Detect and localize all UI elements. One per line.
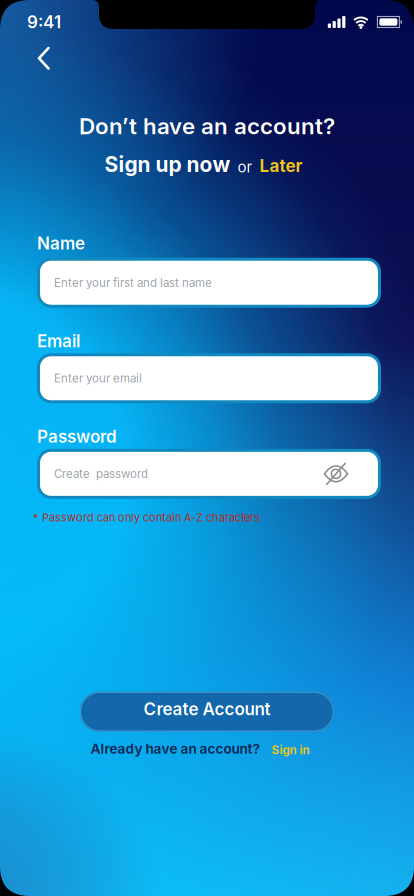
staticText: 9:41 (27, 12, 61, 32)
staticText: Already have an account? (90, 741, 260, 757)
staticText: Name (37, 233, 85, 254)
button[interactable]: Password, Create password (37, 449, 381, 499)
staticText: Enter your first and last name (54, 276, 212, 290)
button[interactable]: Create Account (80, 692, 334, 732)
staticText: Email (37, 331, 80, 351)
staticText: Enter your email (54, 371, 142, 385)
staticText: * Password can only contain A-Z characte… (33, 511, 260, 524)
button[interactable]: Back (39, 48, 48, 68)
staticText: Create Account (143, 699, 270, 719)
button[interactable]: Email, Enter your email (37, 353, 381, 403)
staticText: or (237, 158, 252, 176)
button[interactable]: Sign in (271, 743, 309, 757)
staticText: Sign in (271, 743, 309, 757)
button[interactable]: Name, Enter your first and last name (37, 258, 381, 308)
staticText: Password (37, 426, 117, 447)
staticText: Sign up now (104, 152, 230, 177)
button[interactable]: Later (259, 156, 302, 177)
staticText: Don’t have an account? (79, 112, 335, 140)
button[interactable]: Show password (323, 462, 366, 486)
staticText: Later (259, 156, 302, 176)
staticText: Create password (54, 467, 148, 481)
